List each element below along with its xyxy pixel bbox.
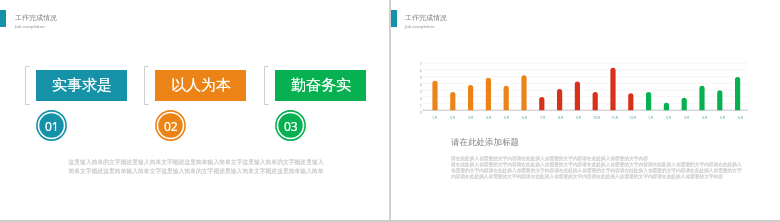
- staticText: 工作完成情况: [405, 13, 447, 22]
- staticText: 8月: [558, 115, 564, 120]
- button[interactable]: 03: [275, 110, 306, 141]
- staticText: 5月: [504, 115, 510, 120]
- staticText: 1: [420, 104, 422, 108]
- staticText: 2月: [450, 115, 456, 120]
- staticText: 7月: [540, 115, 546, 120]
- staticText: Job completion: [405, 24, 435, 30]
- staticText: 4月: [702, 115, 708, 120]
- staticText: 3月: [468, 115, 474, 120]
- staticText: 12月: [629, 115, 637, 120]
- staticText: 这里输入简单的文字概述里输入简单文字概述这里简单输入简单文字这里输入简单的文字概…: [67, 158, 325, 175]
- staticText: 2: [420, 97, 422, 101]
- staticText: 6月: [738, 115, 744, 120]
- button[interactable]: 02: [155, 110, 186, 141]
- staticText: 5月: [720, 115, 726, 120]
- staticText: 02: [164, 118, 178, 134]
- staticText: 11月: [611, 115, 619, 120]
- staticText: 10月: [593, 115, 601, 120]
- staticText: 01: [45, 118, 59, 134]
- staticText: Job completion: [15, 24, 45, 30]
- staticText: 1月: [432, 115, 438, 120]
- staticText: 1月: [648, 115, 654, 120]
- button[interactable]: 01: [36, 110, 67, 141]
- button[interactable]: 勤奋务实: [275, 70, 366, 101]
- staticText: 3: [420, 90, 422, 94]
- staticText: 以人为本: [171, 76, 231, 95]
- staticText: 2月: [666, 115, 672, 120]
- button[interactable]: 实事求是: [36, 70, 127, 101]
- staticText: 5: [420, 76, 422, 80]
- staticText: 工作完成情况: [15, 13, 57, 22]
- button[interactable]: 以人为本: [155, 70, 246, 101]
- staticText: 6: [420, 69, 422, 73]
- staticText: 03: [284, 118, 298, 134]
- staticText: 0: [420, 111, 422, 115]
- staticText: 3月: [684, 115, 690, 120]
- staticText: 4月: [486, 115, 492, 120]
- staticText: 6月: [522, 115, 528, 120]
- staticText: 7: [420, 62, 422, 66]
- staticText: 请在此处添加标题: [451, 137, 519, 148]
- staticText: 9月: [576, 115, 582, 120]
- staticText: 实事求是: [52, 76, 112, 95]
- staticText: 4: [420, 83, 422, 87]
- staticText: 勤奋务实: [291, 76, 351, 95]
- staticText: 请在此处插入你需要的文字内容请在此处插入你需要的文字内容请在此处插入你需要的文字…: [451, 155, 745, 179]
